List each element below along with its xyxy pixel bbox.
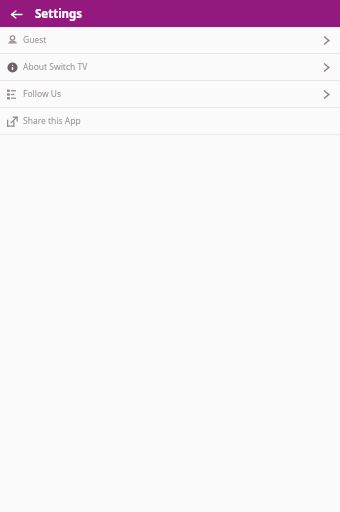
staticText: About Switch TV [23,61,88,73]
button[interactable]: Back [5,3,27,25]
button[interactable]: About Switch TV [0,54,340,80]
button[interactable]: Guest [0,27,340,53]
button[interactable]: Follow Us [0,81,340,107]
staticText: Follow Us [23,88,62,100]
staticText: Share this App [23,115,81,127]
staticText: Settings [35,6,83,22]
button[interactable]: Share this App [0,108,340,134]
staticText: Guest [23,34,47,46]
